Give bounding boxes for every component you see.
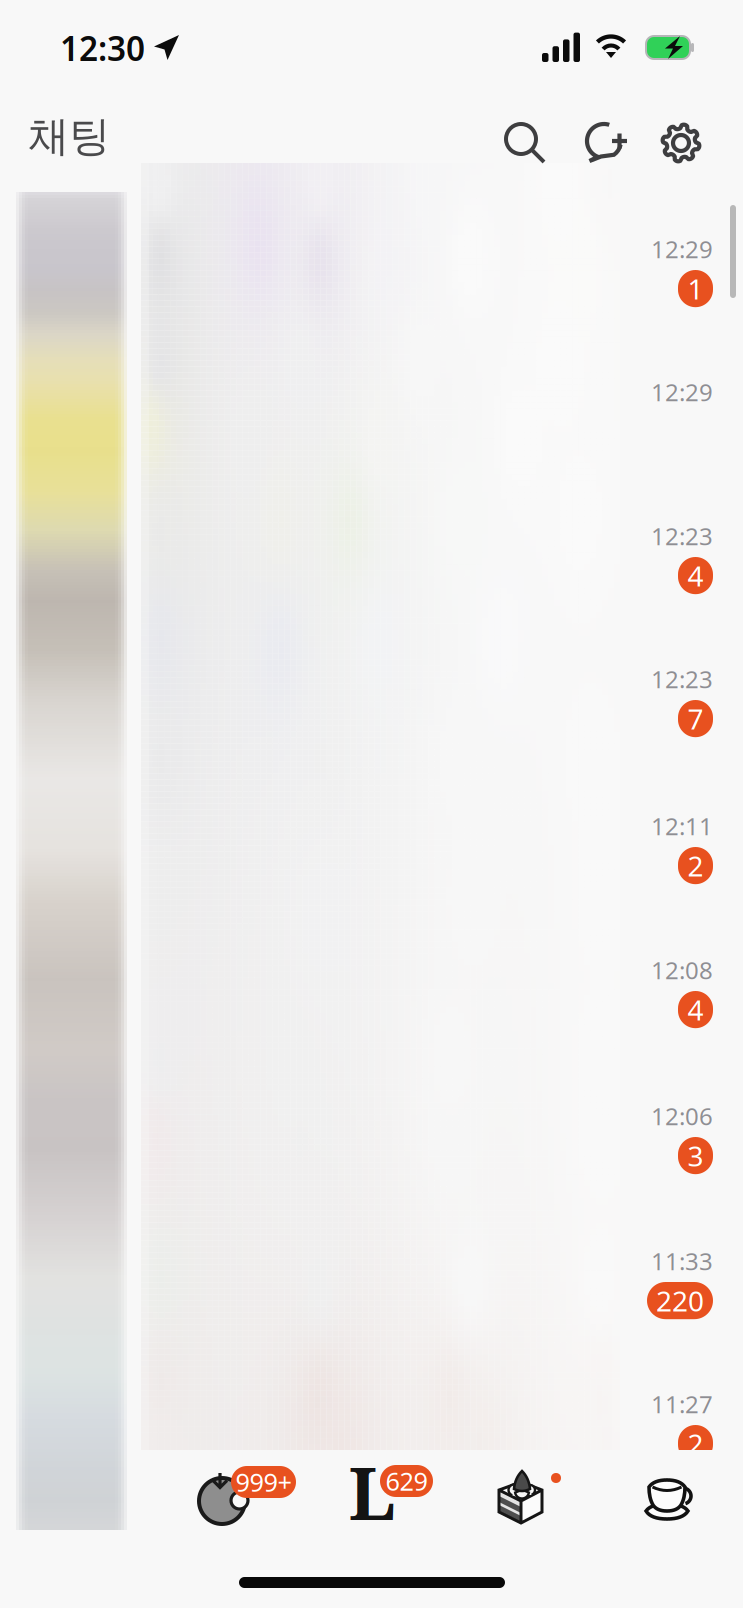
- staticText: 2: [687, 1425, 703, 1462]
- staticText: 12:29: [651, 233, 713, 265]
- staticText: 12:23: [651, 663, 713, 695]
- staticText: 12:29: [651, 376, 713, 408]
- staticText: 629: [385, 1464, 427, 1498]
- staticText: 11:27: [651, 1388, 713, 1420]
- staticText: 채팅: [28, 111, 110, 162]
- button[interactable]: Search: [496, 114, 556, 174]
- staticText: 4: [687, 557, 703, 594]
- staticText: L: [348, 1443, 395, 1541]
- button[interactable]: Friends: [187, 1440, 373, 1550]
- staticText: 2: [687, 847, 703, 884]
- staticText: 12:08: [651, 954, 713, 986]
- staticText: 12:06: [651, 1100, 713, 1132]
- button[interactable]: More: [644, 1440, 743, 1550]
- button[interactable]: Settings: [651, 113, 711, 173]
- staticText: 12:23: [651, 520, 713, 552]
- staticText: 12:30: [60, 26, 145, 70]
- button[interactable]: New chat: [576, 113, 636, 173]
- button[interactable]: Shopping: [497, 1440, 617, 1550]
- staticText: 3: [687, 1137, 703, 1174]
- button[interactable]: Chats: [337, 1440, 497, 1550]
- staticText: 12:11: [651, 810, 713, 842]
- staticText: 999+: [235, 1465, 291, 1499]
- staticText: 11:33: [651, 1245, 713, 1277]
- staticText: 4: [687, 991, 703, 1028]
- staticText: 7: [687, 700, 703, 737]
- staticText: 220: [656, 1282, 704, 1319]
- staticText: 1: [687, 270, 703, 307]
